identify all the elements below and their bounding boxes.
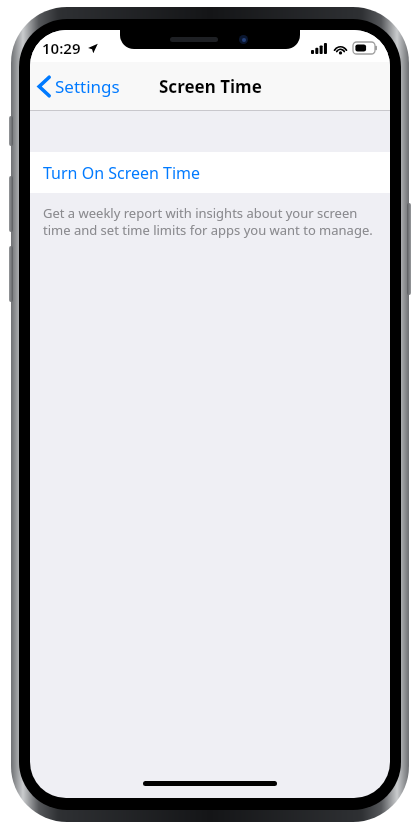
staticText: Get a weekly report with insights about …	[43, 204, 375, 239]
button[interactable]: Settings	[30, 62, 130, 111]
staticText: 10:29	[42, 38, 81, 58]
staticText: Turn On Screen Time	[43, 162, 201, 184]
button[interactable]: Turn On Screen Time	[30, 152, 390, 193]
staticText: Settings	[55, 75, 120, 98]
staticText: Screen Time	[159, 75, 262, 98]
